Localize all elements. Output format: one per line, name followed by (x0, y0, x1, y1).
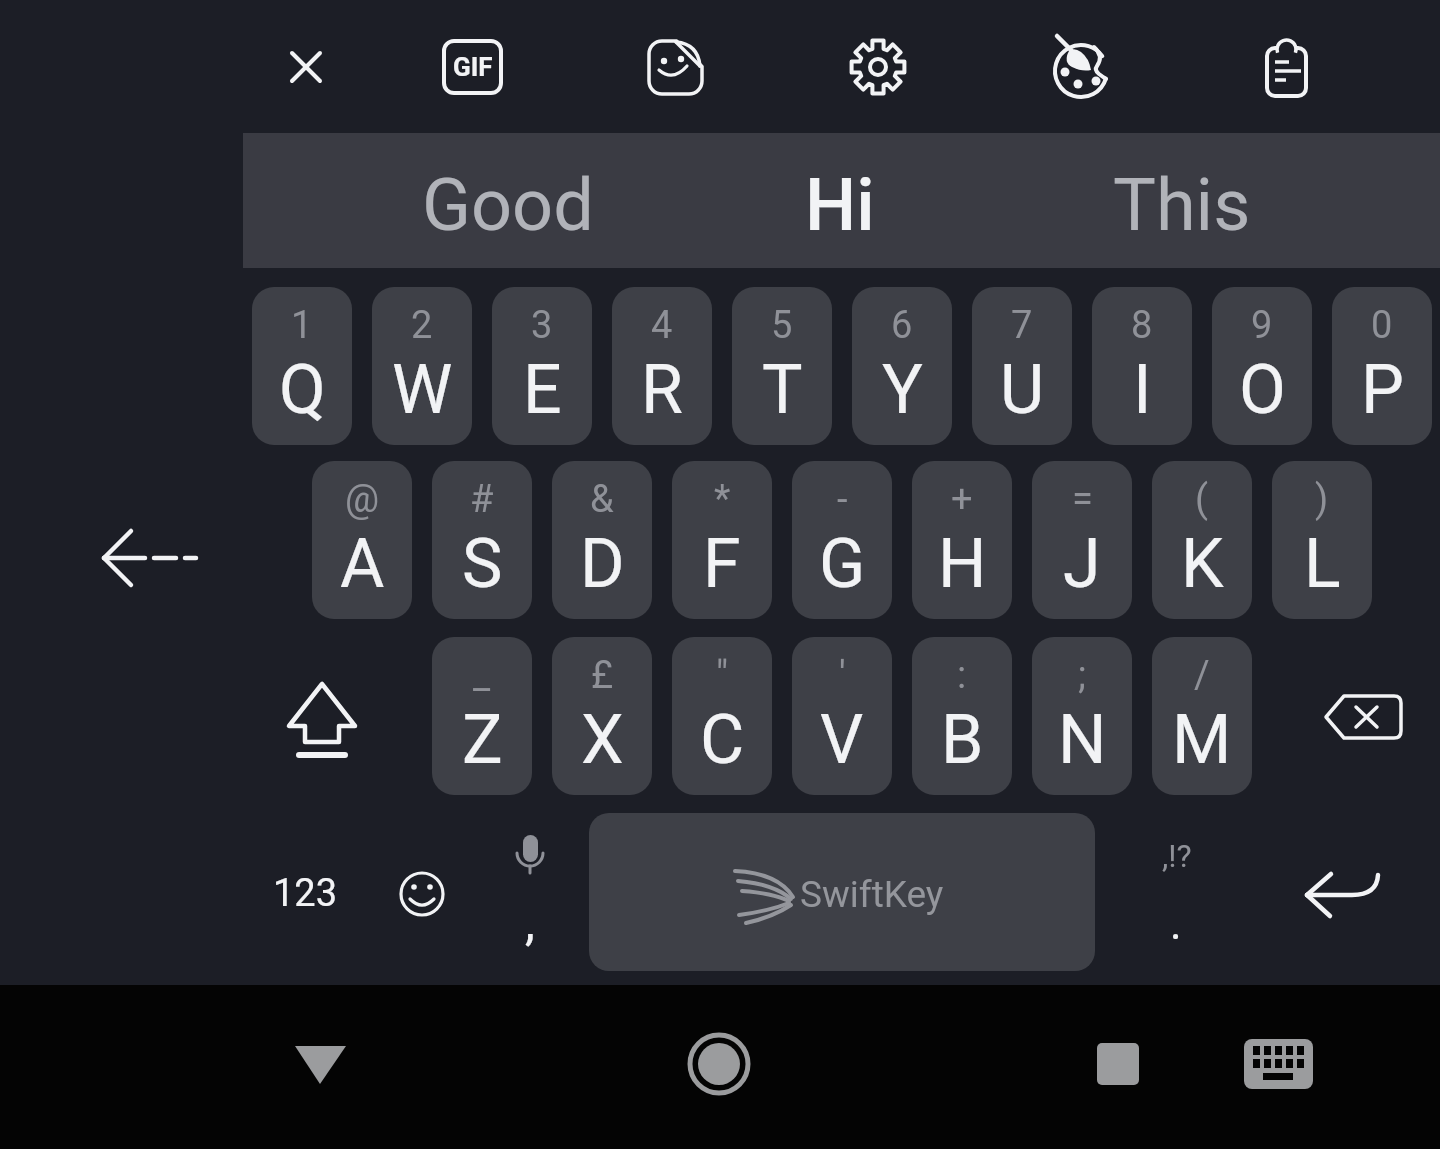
staticText: Hi (805, 163, 875, 247)
button[interactable] (669, 1014, 769, 1114)
staticText: P (1361, 350, 1404, 430)
staticText: ) (1315, 477, 1329, 522)
staticText: + (951, 477, 973, 522)
button[interactable] (432, 637, 532, 795)
staticText: T (762, 350, 803, 430)
staticText: This (1113, 163, 1251, 247)
staticText: 1 (291, 303, 313, 348)
button[interactable]: GIF (442, 39, 503, 95)
staticText: A (340, 524, 385, 604)
button[interactable] (276, 37, 336, 97)
button[interactable] (1272, 461, 1372, 619)
staticText: ' (839, 653, 846, 698)
button[interactable] (552, 461, 652, 619)
button[interactable] (270, 1020, 370, 1110)
staticText: O (1239, 350, 1286, 430)
button[interactable] (912, 637, 1012, 795)
staticText: R (641, 350, 683, 430)
staticText: V (820, 700, 864, 780)
button[interactable] (1067, 1020, 1167, 1110)
staticText: : (957, 653, 967, 698)
staticText: * (714, 477, 731, 522)
staticText: £ (591, 653, 614, 698)
staticText: M (1172, 700, 1232, 780)
button[interactable] (732, 287, 832, 445)
button[interactable] (1152, 637, 1252, 795)
button[interactable] (1041, 133, 1440, 268)
button[interactable] (792, 637, 892, 795)
button[interactable] (589, 813, 1095, 971)
button[interactable] (642, 133, 1041, 268)
staticText: 8 (1131, 303, 1153, 348)
button[interactable] (1230, 1020, 1330, 1110)
staticText: H (938, 524, 987, 604)
staticText: B (941, 700, 984, 780)
staticText: N (1058, 700, 1107, 780)
button[interactable] (372, 830, 472, 960)
staticText: X (581, 700, 624, 780)
staticText: K (1181, 524, 1224, 604)
staticText: E (523, 350, 562, 430)
button[interactable] (1120, 815, 1230, 965)
button[interactable] (848, 37, 910, 99)
staticText: G (819, 524, 866, 604)
button[interactable] (672, 461, 772, 619)
button[interactable] (1032, 637, 1132, 795)
staticText: _ (473, 653, 491, 698)
staticText: Z (462, 700, 503, 780)
staticText: SwiftKey (800, 873, 944, 916)
staticText: 3 (531, 303, 553, 348)
button[interactable] (552, 637, 652, 795)
staticText: 9 (1251, 303, 1273, 348)
staticText: 5 (771, 303, 793, 348)
staticText: 2 (411, 303, 433, 348)
staticText: / (1194, 653, 1210, 698)
staticText: J (1063, 524, 1101, 604)
staticText: I (1133, 350, 1152, 430)
button[interactable] (312, 461, 412, 619)
button[interactable] (1212, 287, 1312, 445)
button[interactable] (792, 461, 892, 619)
button[interactable] (1310, 650, 1420, 790)
button[interactable] (243, 133, 642, 268)
staticText: W (392, 350, 453, 430)
staticText: ( (1195, 477, 1209, 522)
staticText: . (1170, 898, 1182, 950)
button[interactable] (972, 287, 1072, 445)
button[interactable] (60, 490, 210, 630)
staticText: @ (345, 477, 380, 522)
staticText: 6 (891, 303, 913, 348)
staticText: C (700, 700, 745, 780)
button[interactable] (1032, 461, 1132, 619)
staticText: ; (1078, 653, 1087, 698)
staticText: D (580, 524, 625, 604)
button[interactable] (645, 37, 707, 99)
staticText: GIF (453, 52, 493, 82)
staticText: F (703, 524, 741, 604)
staticText: , (525, 893, 535, 952)
button[interactable] (252, 287, 352, 445)
button[interactable] (1152, 461, 1252, 619)
staticText: 4 (651, 303, 673, 348)
staticText: L (1304, 524, 1341, 604)
button[interactable] (255, 830, 365, 960)
button[interactable] (1290, 830, 1400, 960)
button[interactable] (492, 287, 592, 445)
staticText: 123 (273, 871, 338, 916)
staticText: ,!? (1162, 837, 1192, 875)
button[interactable] (1092, 287, 1192, 445)
button[interactable] (1332, 287, 1432, 445)
button[interactable] (270, 650, 380, 790)
staticText: # (470, 477, 494, 522)
button[interactable] (1052, 37, 1114, 99)
button[interactable] (1256, 37, 1318, 99)
button[interactable] (852, 287, 952, 445)
button[interactable] (672, 637, 772, 795)
button[interactable] (612, 287, 712, 445)
staticText: U (1000, 350, 1045, 430)
staticText: Q (279, 350, 326, 430)
button[interactable] (912, 461, 1012, 619)
button[interactable] (372, 287, 472, 445)
button[interactable] (432, 461, 532, 619)
button[interactable] (480, 815, 580, 965)
